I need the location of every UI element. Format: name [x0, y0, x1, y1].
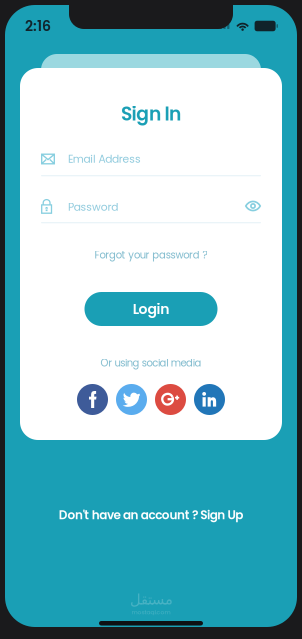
button[interactable]: Forgot your password ?: [20, 247, 282, 263]
button[interactable]: Show password: [243, 198, 261, 214]
staticText: مستقل: [129, 591, 172, 608]
staticText: Password: [68, 199, 118, 214]
staticText: 2:16: [25, 16, 51, 36]
button[interactable]: Twitter: [116, 384, 147, 415]
button[interactable]: Login: [84, 292, 217, 326]
staticText: Or using social media: [100, 356, 201, 370]
staticText: Email Address: [68, 151, 141, 166]
button[interactable]: Facebook: [77, 384, 108, 415]
staticText: mostaql.com: [131, 608, 170, 616]
staticText: Forgot your password ?: [95, 248, 207, 262]
staticText: Don't have an account ? Sign Up: [59, 507, 243, 523]
staticText: Login: [133, 299, 169, 319]
button[interactable]: Google Plus: [155, 384, 186, 415]
staticText: Sign In: [121, 101, 181, 127]
button[interactable]: Don't have an account ? Sign Up: [5, 506, 297, 524]
button[interactable]: LinkedIn: [194, 384, 225, 415]
